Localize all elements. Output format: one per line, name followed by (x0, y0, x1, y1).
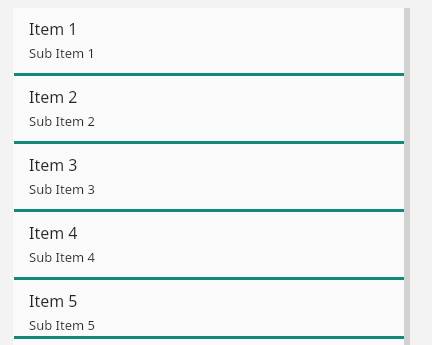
staticText: Item 2 (29, 86, 78, 108)
staticText: Sub Item 3 (29, 180, 95, 198)
staticText: Sub Item 5 (29, 316, 95, 334)
button[interactable]: Item 2 (13, 76, 410, 141)
button[interactable]: Item 5 (13, 280, 410, 336)
staticText: Item 1 (29, 18, 78, 40)
button[interactable]: Item 3 (13, 144, 410, 209)
staticText: Sub Item 4 (29, 248, 95, 266)
staticText: Item 3 (29, 154, 78, 176)
button[interactable]: Item 4 (13, 212, 410, 277)
staticText: Sub Item 1 (29, 44, 95, 62)
staticText: Sub Item 2 (29, 112, 95, 130)
staticText: Item 4 (29, 222, 78, 244)
staticText: Item 5 (29, 290, 78, 312)
button[interactable]: Item 1 (13, 8, 410, 73)
